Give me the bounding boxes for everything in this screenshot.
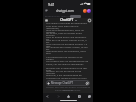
- button[interactable]: Open in app: [70, 15, 81, 18]
- staticText: sont pour vous aider dans le laboratoire…: [46, 24, 90, 30]
- button[interactable]: Message ChatGPT: [46, 80, 90, 86]
- staticText: donc normal ou presque normal. Le test: [46, 42, 90, 48]
- staticText: de controle des acides urique, ce qui es…: [46, 45, 90, 51]
- staticText: taux de 3.48 mg/dL suivant le cas, il es…: [46, 38, 90, 44]
- button[interactable]: Profile: [83, 9, 87, 13]
- staticText: chatgpt.com: [56, 9, 74, 13]
- button[interactable]: Share: [65, 93, 71, 99]
- button[interactable]: Tabs: [86, 93, 92, 99]
- staticText: anormal, il est recommande de: [46, 73, 82, 76]
- staticText: ChatGPT: [60, 18, 74, 22]
- staticText: fournies par le laboratoire ou le test s…: [46, 66, 90, 72]
- staticText: ces chiffres avec un professionnel de: [46, 59, 89, 62]
- staticText: ChatGPT peut faire des erreurs. Envisage…: [43, 86, 93, 92]
- staticText: Message ChatGPT: [51, 81, 86, 85]
- staticText: informations importantes.: [43, 89, 93, 92]
- button[interactable]: Forward: [55, 93, 61, 99]
- button[interactable]: ChatGPT: [59, 18, 78, 22]
- staticText: trois et quatre point cinq grammes. Ce: [46, 35, 90, 41]
- button[interactable]: Account: [87, 9, 91, 13]
- staticText: Browse faster. Learn more: [45, 15, 74, 18]
- staticText: sante, car les valeurs specifiques: [46, 62, 84, 65]
- staticText: realises. En cas de doute ou de resultat: [46, 69, 90, 75]
- staticText: de 30 ans, elles se situent entre enviro…: [46, 31, 90, 37]
- staticText: consulter un medecin pour un suivi.: [46, 76, 88, 79]
- staticText: 9:41: [48, 2, 55, 6]
- button[interactable]: Menu: [45, 19, 48, 22]
- staticText: Les valeurs normales de laboratoire: [46, 21, 87, 24]
- staticText: demande dans ces situations, peut etre.: [46, 49, 90, 55]
- staticText: mais plus generalement, pour un homme: [46, 28, 90, 34]
- button[interactable]: Bookmarks: [76, 93, 82, 99]
- staticText: Il est important de verifier et de valid…: [46, 55, 90, 61]
- button[interactable]: New chat: [88, 19, 91, 22]
- button[interactable]: Page menu: [45, 9, 48, 12]
- button[interactable]: Back: [44, 93, 50, 99]
